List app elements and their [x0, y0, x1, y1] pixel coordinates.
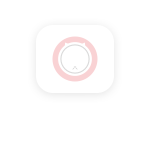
button[interactable]: Cat activity ring	[36, 25, 114, 93]
